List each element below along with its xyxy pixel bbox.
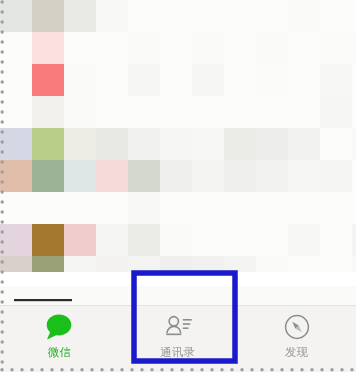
staticText: 发现 — [285, 345, 308, 359]
staticText: 微信 — [48, 345, 71, 359]
button[interactable]: 微信 — [0, 306, 118, 372]
staticText: 通讯录 — [160, 345, 195, 359]
button[interactable]: 发现 — [237, 306, 356, 372]
button[interactable]: 通讯录 — [118, 306, 237, 372]
